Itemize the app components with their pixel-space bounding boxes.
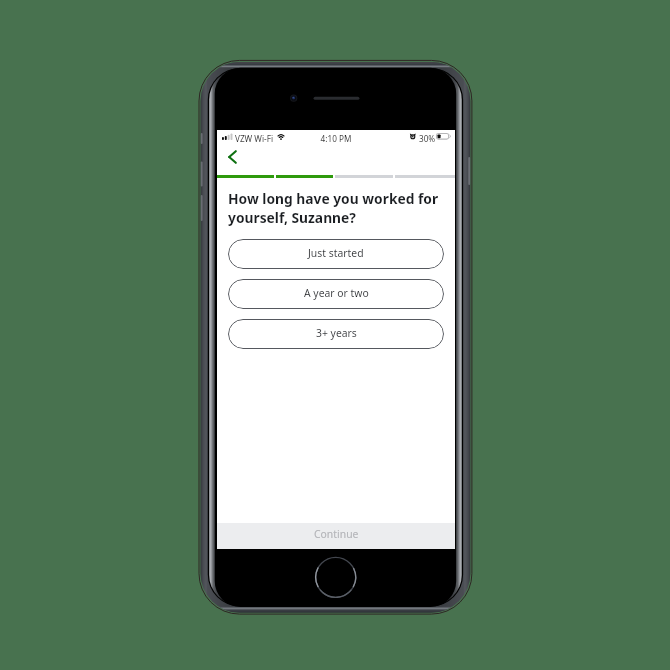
staticText: 4:10 PM (217, 133, 455, 144)
staticText: How long have you worked for yourself, S… (228, 189, 445, 227)
button[interactable]: Back (220, 145, 244, 169)
button[interactable]: Continue (217, 523, 455, 549)
button[interactable]: Just started (228, 239, 444, 269)
button[interactable]: A year or two (228, 279, 444, 309)
button[interactable]: 3+ years (228, 319, 444, 349)
staticText: Continue (314, 527, 359, 541)
staticText: Just started (308, 246, 364, 260)
staticText: A year or two (304, 286, 369, 300)
staticText: VZW Wi-Fi (235, 133, 274, 144)
staticText: 3+ years (316, 326, 357, 340)
staticText: 30% (419, 133, 436, 144)
